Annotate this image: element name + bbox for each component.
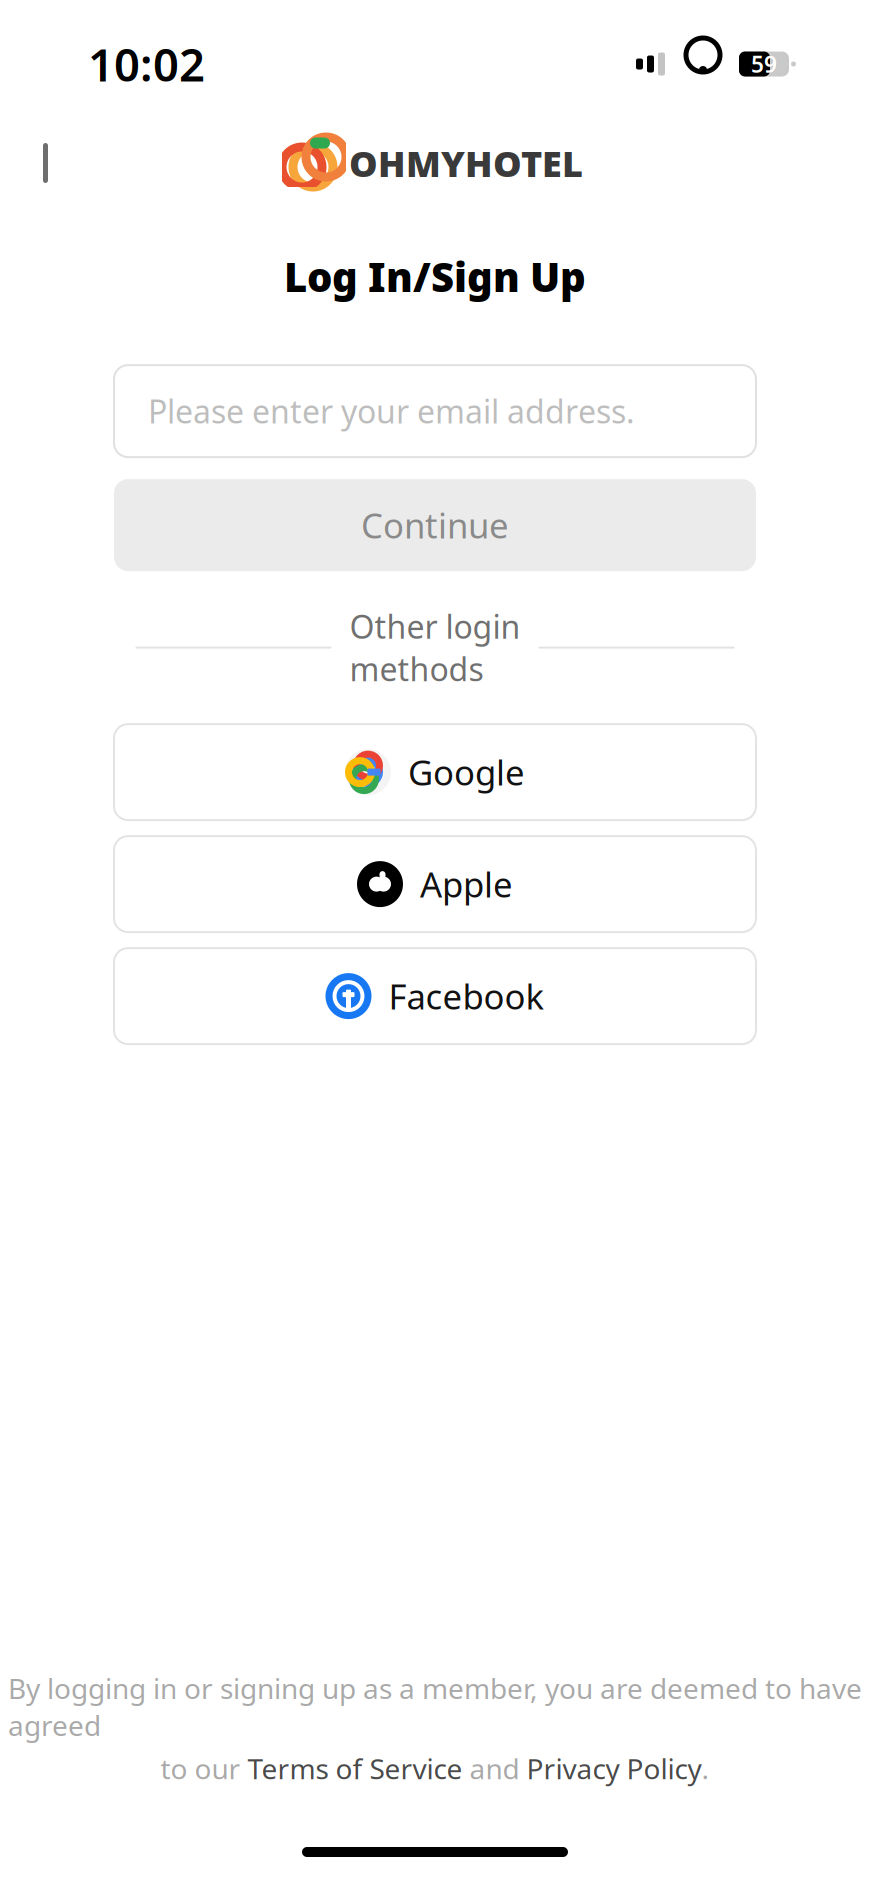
staticText: 59: [751, 49, 777, 79]
button[interactable]: Facebook: [114, 948, 756, 1044]
button[interactable]: Terms of Service: [247, 1750, 462, 1787]
staticText: Terms of Service: [247, 1750, 462, 1787]
button[interactable]: Privacy Policy: [526, 1750, 701, 1787]
staticText: and: [462, 1750, 526, 1787]
staticText: Log In/Sign Up: [284, 250, 586, 303]
staticText: Apple: [420, 861, 513, 907]
staticText: to our: [160, 1750, 247, 1787]
staticText: Please enter your email address.: [148, 390, 635, 432]
button[interactable]: Apple: [114, 836, 756, 932]
button[interactable]: Google: [114, 724, 756, 820]
staticText: Google: [408, 749, 525, 795]
staticText: Continue: [361, 502, 509, 548]
button[interactable]: Continue: [114, 479, 756, 571]
staticText: Facebook: [388, 973, 544, 1019]
staticText: By logging in or signing up as a member,…: [8, 1669, 862, 1744]
staticText: Other login methods: [349, 605, 520, 690]
button[interactable]: Please enter your email address.: [114, 365, 756, 457]
button[interactable]: Back: [18, 131, 82, 195]
staticText: .: [701, 1750, 709, 1787]
staticText: Privacy Policy: [526, 1750, 701, 1787]
staticText: OHMYHOTEL: [349, 139, 583, 187]
staticText: 10:02: [88, 34, 205, 94]
